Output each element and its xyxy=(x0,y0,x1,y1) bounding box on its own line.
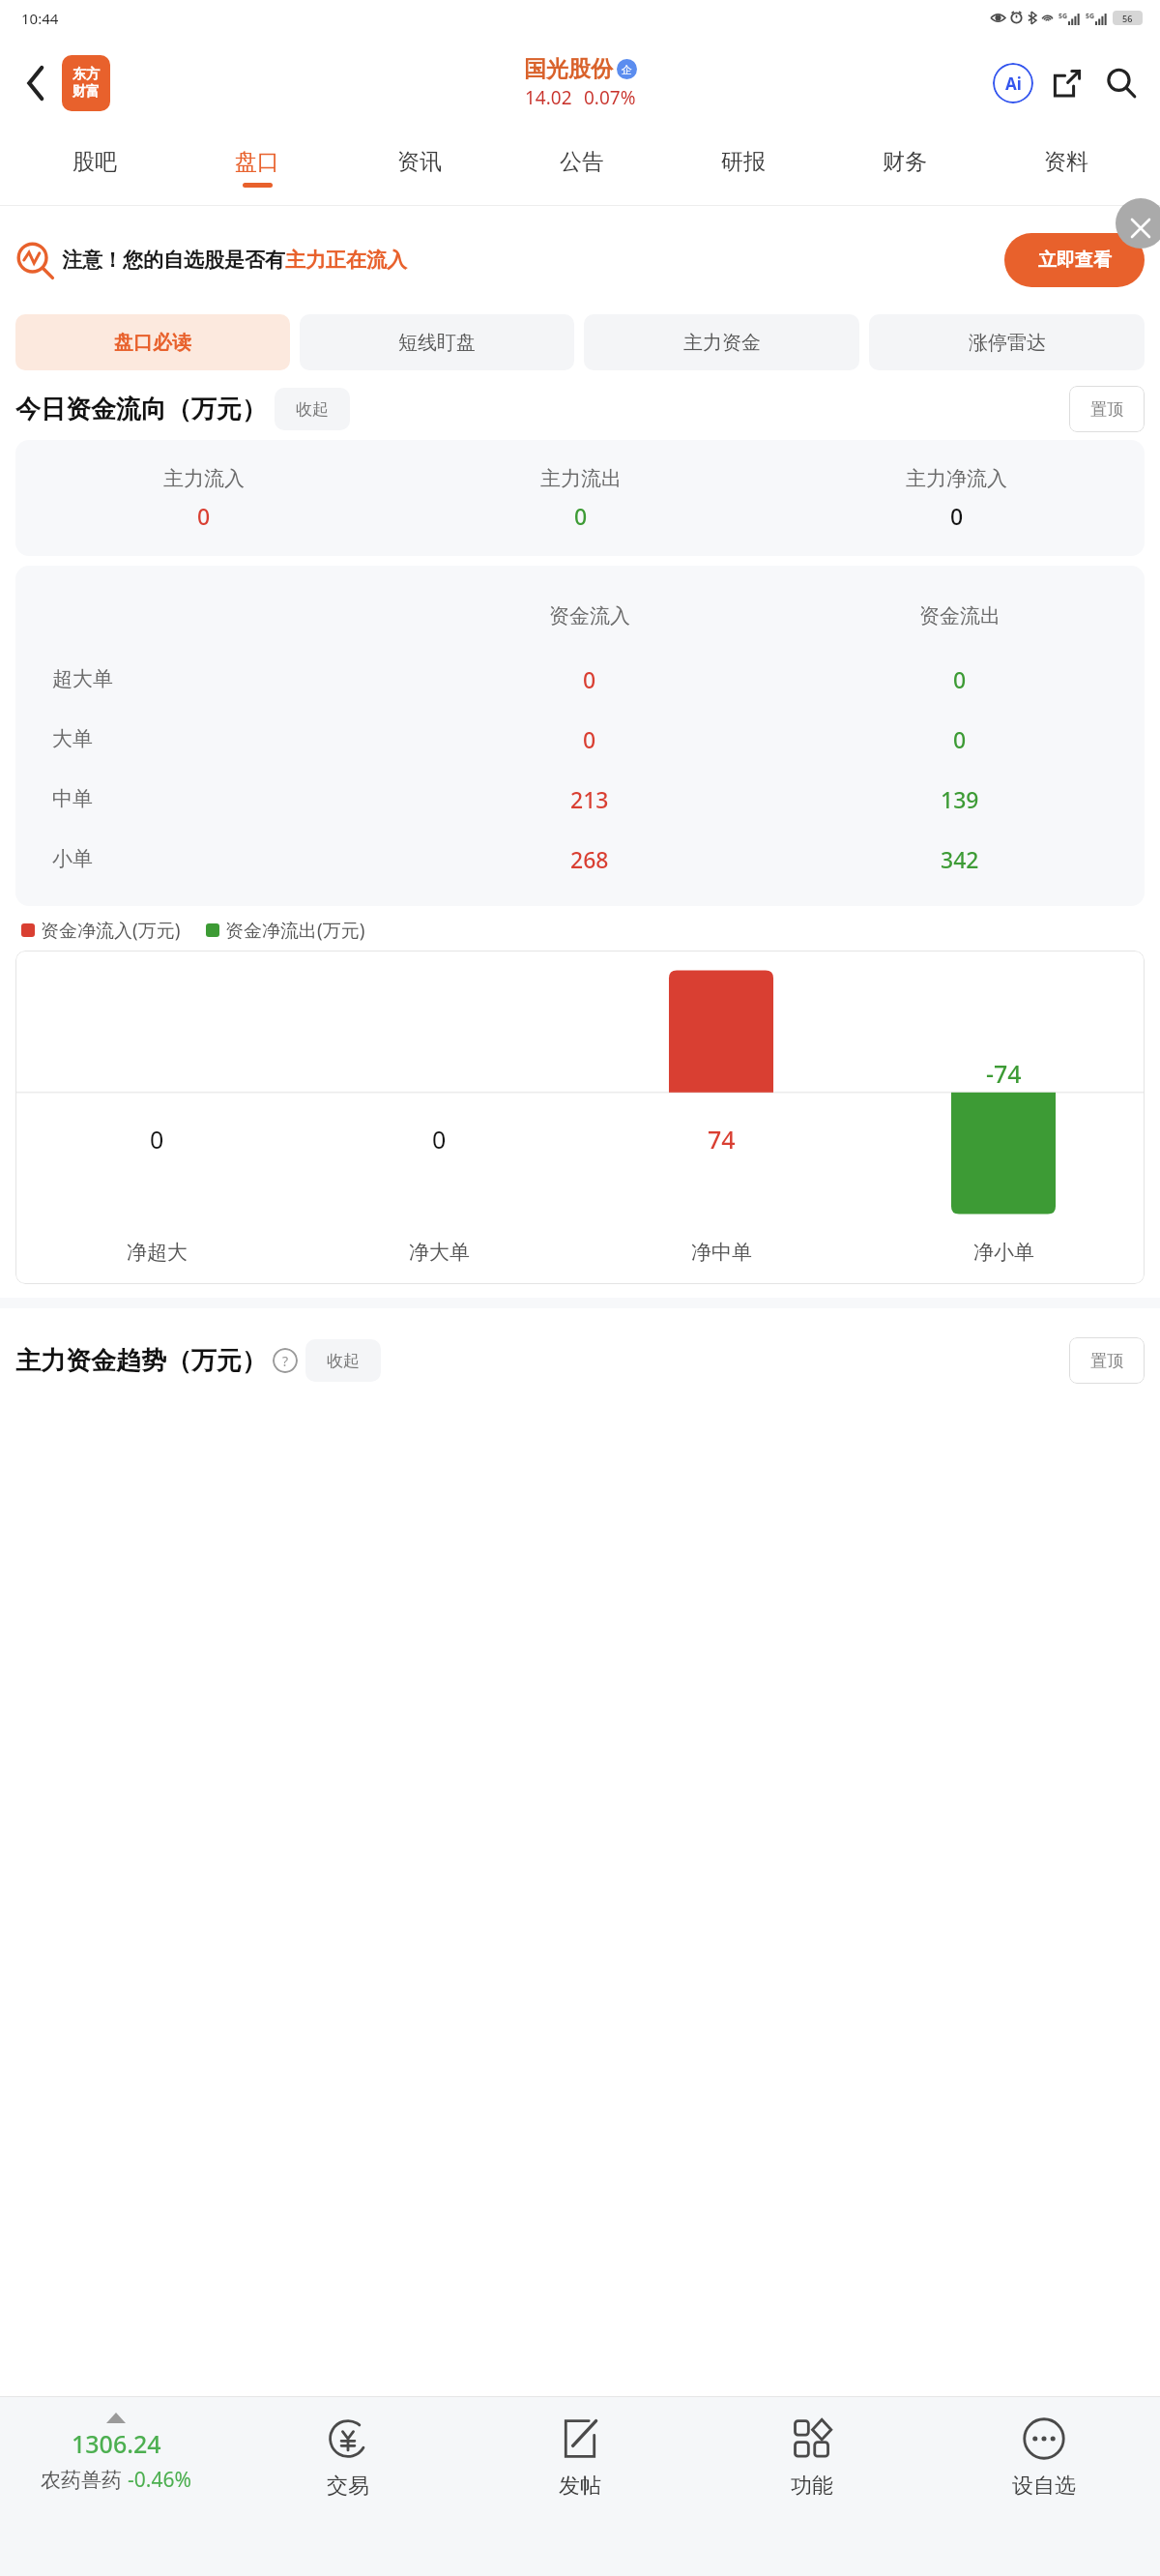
staticText: 企 xyxy=(622,63,632,76)
staticText: 主力资金趋势（万元） xyxy=(15,1345,267,1377)
staticText: 342 xyxy=(941,844,979,874)
staticText: 213 xyxy=(570,784,609,814)
button[interactable]: Search xyxy=(1094,56,1148,110)
staticText: 主力流出 xyxy=(540,466,622,491)
button[interactable]: 设自选 xyxy=(928,2397,1160,2576)
button[interactable]: 功能 xyxy=(696,2397,928,2576)
staticText: 0 xyxy=(432,1123,447,1156)
staticText: 置顶 xyxy=(1090,1351,1123,1371)
staticText: 净中单 xyxy=(691,1240,752,1265)
staticText: 资料 xyxy=(1044,148,1088,176)
button[interactable]: Help xyxy=(273,1348,298,1373)
staticText: 资金流出 xyxy=(919,603,1000,629)
staticText: 0 xyxy=(583,664,596,694)
staticText: ? xyxy=(282,1352,289,1370)
staticText: 14.02 xyxy=(525,85,572,110)
staticText: 中单 xyxy=(52,786,93,811)
staticText: 1306.24 xyxy=(72,2427,161,2460)
staticText: 立即查看 xyxy=(1038,249,1112,272)
staticText: 注意！您的自选股是否有 xyxy=(62,248,285,273)
staticText: 5G xyxy=(1086,12,1095,21)
staticText: 74 xyxy=(708,1123,736,1156)
button[interactable]: 置顶 xyxy=(1069,1337,1145,1384)
staticText: 小单 xyxy=(52,846,93,871)
button[interactable]: 主力资金 xyxy=(584,314,859,370)
staticText: 国光股份 xyxy=(524,55,613,83)
staticText: 主力资金 xyxy=(683,331,761,355)
staticText: 股吧 xyxy=(72,148,117,176)
button[interactable]: 公告 xyxy=(501,130,662,205)
staticText: 资金净流出(万元) xyxy=(225,918,365,943)
button[interactable]: 涨停雷达 xyxy=(869,314,1145,370)
staticText: 大单 xyxy=(52,726,93,751)
staticText: 农药兽药 xyxy=(41,2468,122,2493)
staticText: 资金流入 xyxy=(549,603,630,629)
button[interactable]: 盘口 xyxy=(176,130,338,205)
button[interactable]: 收起 xyxy=(275,388,350,430)
staticText: 净超大 xyxy=(127,1240,188,1265)
staticText: 资讯 xyxy=(397,148,442,176)
staticText: 发帖 xyxy=(559,2473,601,2500)
staticText: 0 xyxy=(953,664,967,694)
staticText: 主力正在流入 xyxy=(285,248,407,273)
staticText: 56 xyxy=(1122,13,1133,24)
button[interactable]: 收起 xyxy=(305,1339,381,1382)
staticText: 超大单 xyxy=(52,666,113,691)
staticText: -74 xyxy=(986,1057,1022,1090)
staticText: 资金净流入(万元) xyxy=(41,918,181,943)
button[interactable]: 立即查看 xyxy=(1004,233,1145,287)
staticText: 今日资金流向（万元） xyxy=(15,394,267,425)
staticText: 财富 xyxy=(72,83,100,101)
staticText: 净大单 xyxy=(409,1240,470,1265)
button[interactable]: Close xyxy=(1116,198,1160,249)
staticText: 净小单 xyxy=(973,1240,1034,1265)
button[interactable]: 交易 xyxy=(232,2397,464,2576)
staticText: 涨停雷达 xyxy=(969,331,1046,355)
staticText: 139 xyxy=(941,784,979,814)
staticText: 功能 xyxy=(791,2473,833,2500)
staticText: 研报 xyxy=(721,148,766,176)
staticText: 0 xyxy=(950,501,964,531)
staticText: 0 xyxy=(574,501,588,531)
staticText: 主力流入 xyxy=(163,466,245,491)
button[interactable]: 财务 xyxy=(824,130,985,205)
staticText: 东方 xyxy=(72,66,100,83)
staticText: 收起 xyxy=(296,399,329,420)
button[interactable]: 1306.24 xyxy=(0,2397,232,2576)
button[interactable]: 资讯 xyxy=(338,130,501,205)
staticText: 财务 xyxy=(883,148,927,176)
staticText: 10:44 xyxy=(21,9,59,28)
staticText: 0.07% xyxy=(584,85,636,110)
staticText: 收起 xyxy=(327,1351,360,1371)
button[interactable]: Share xyxy=(1040,56,1094,110)
staticText: 0 xyxy=(150,1123,164,1156)
staticText: 0 xyxy=(953,724,967,754)
staticText: -0.46% xyxy=(128,2466,191,2494)
button[interactable]: Back xyxy=(14,61,58,105)
button[interactable]: 发帖 xyxy=(464,2397,696,2576)
staticText: 268 xyxy=(570,844,609,874)
staticText: 置顶 xyxy=(1090,399,1123,420)
staticText: Ai xyxy=(1005,73,1022,95)
button[interactable]: 资料 xyxy=(985,130,1146,205)
staticText: 0 xyxy=(197,501,211,531)
staticText: 交易 xyxy=(327,2473,369,2500)
button[interactable]: AI xyxy=(986,56,1040,110)
staticText: 公告 xyxy=(560,148,604,176)
staticText: 设自选 xyxy=(1012,2473,1076,2500)
staticText: 盘口必读 xyxy=(114,331,191,355)
staticText: 5G xyxy=(1058,12,1068,21)
button[interactable]: 置顶 xyxy=(1069,386,1145,432)
button[interactable]: 研报 xyxy=(662,130,824,205)
staticText: 0 xyxy=(583,724,596,754)
button[interactable]: 股吧 xyxy=(14,130,176,205)
button[interactable]: 东方财富 xyxy=(62,55,110,111)
staticText: 盘口 xyxy=(235,148,279,176)
button[interactable]: 盘口必读 xyxy=(15,314,290,370)
staticText: 主力净流入 xyxy=(906,466,1007,491)
button[interactable]: 短线盯盘 xyxy=(300,314,574,370)
staticText: 短线盯盘 xyxy=(398,331,476,355)
